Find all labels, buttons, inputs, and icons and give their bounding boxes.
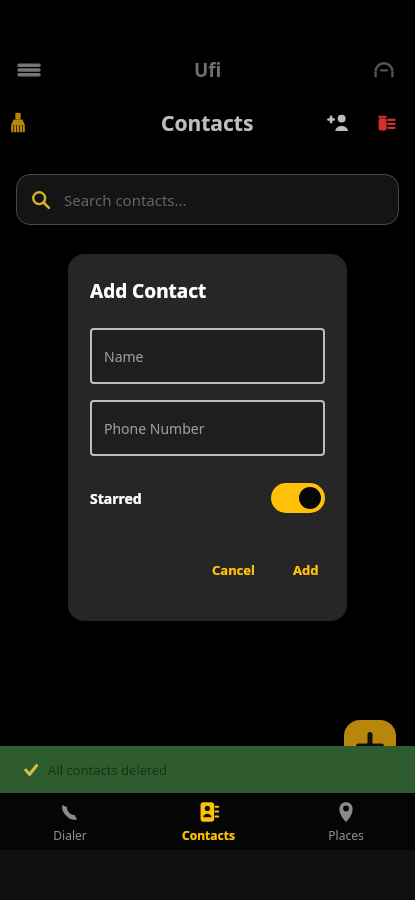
- button[interactable]: Cancel: [206, 555, 261, 585]
- staticText: Add Contact: [90, 278, 207, 304]
- staticText: Add: [293, 561, 319, 579]
- button[interactable]: Name: [90, 328, 325, 384]
- button[interactable]: Clear: [0, 103, 38, 143]
- button[interactable]: All contacts deleted: [0, 746, 415, 793]
- button[interactable]: Search contacts...: [16, 174, 399, 225]
- staticText: Places: [328, 827, 364, 843]
- staticText: Contacts: [182, 827, 235, 843]
- button[interactable]: Add contact: [344, 720, 396, 772]
- staticText: Ufi: [194, 57, 222, 83]
- button[interactable]: Dialer: [0, 795, 139, 849]
- staticText: Dialer: [53, 827, 87, 843]
- button[interactable]: Phone Number: [90, 400, 325, 456]
- staticText: Contacts: [161, 109, 254, 138]
- staticText: Phone Number: [104, 419, 205, 438]
- button[interactable]: Add: [287, 555, 325, 585]
- button[interactable]: Places: [277, 795, 415, 849]
- staticText: Search contacts...: [64, 190, 187, 210]
- staticText: Name: [104, 347, 144, 366]
- staticText: Cancel: [212, 561, 255, 579]
- staticText: Starred: [90, 489, 142, 508]
- button[interactable]: Starred toggle: [271, 483, 325, 513]
- button[interactable]: Menu: [12, 53, 46, 87]
- button[interactable]: Contacts: [139, 795, 277, 849]
- staticText: All contacts deleted: [48, 761, 168, 779]
- button[interactable]: Delete all: [365, 103, 405, 143]
- button[interactable]: Support: [367, 53, 401, 87]
- button[interactable]: Add contact: [319, 103, 359, 143]
